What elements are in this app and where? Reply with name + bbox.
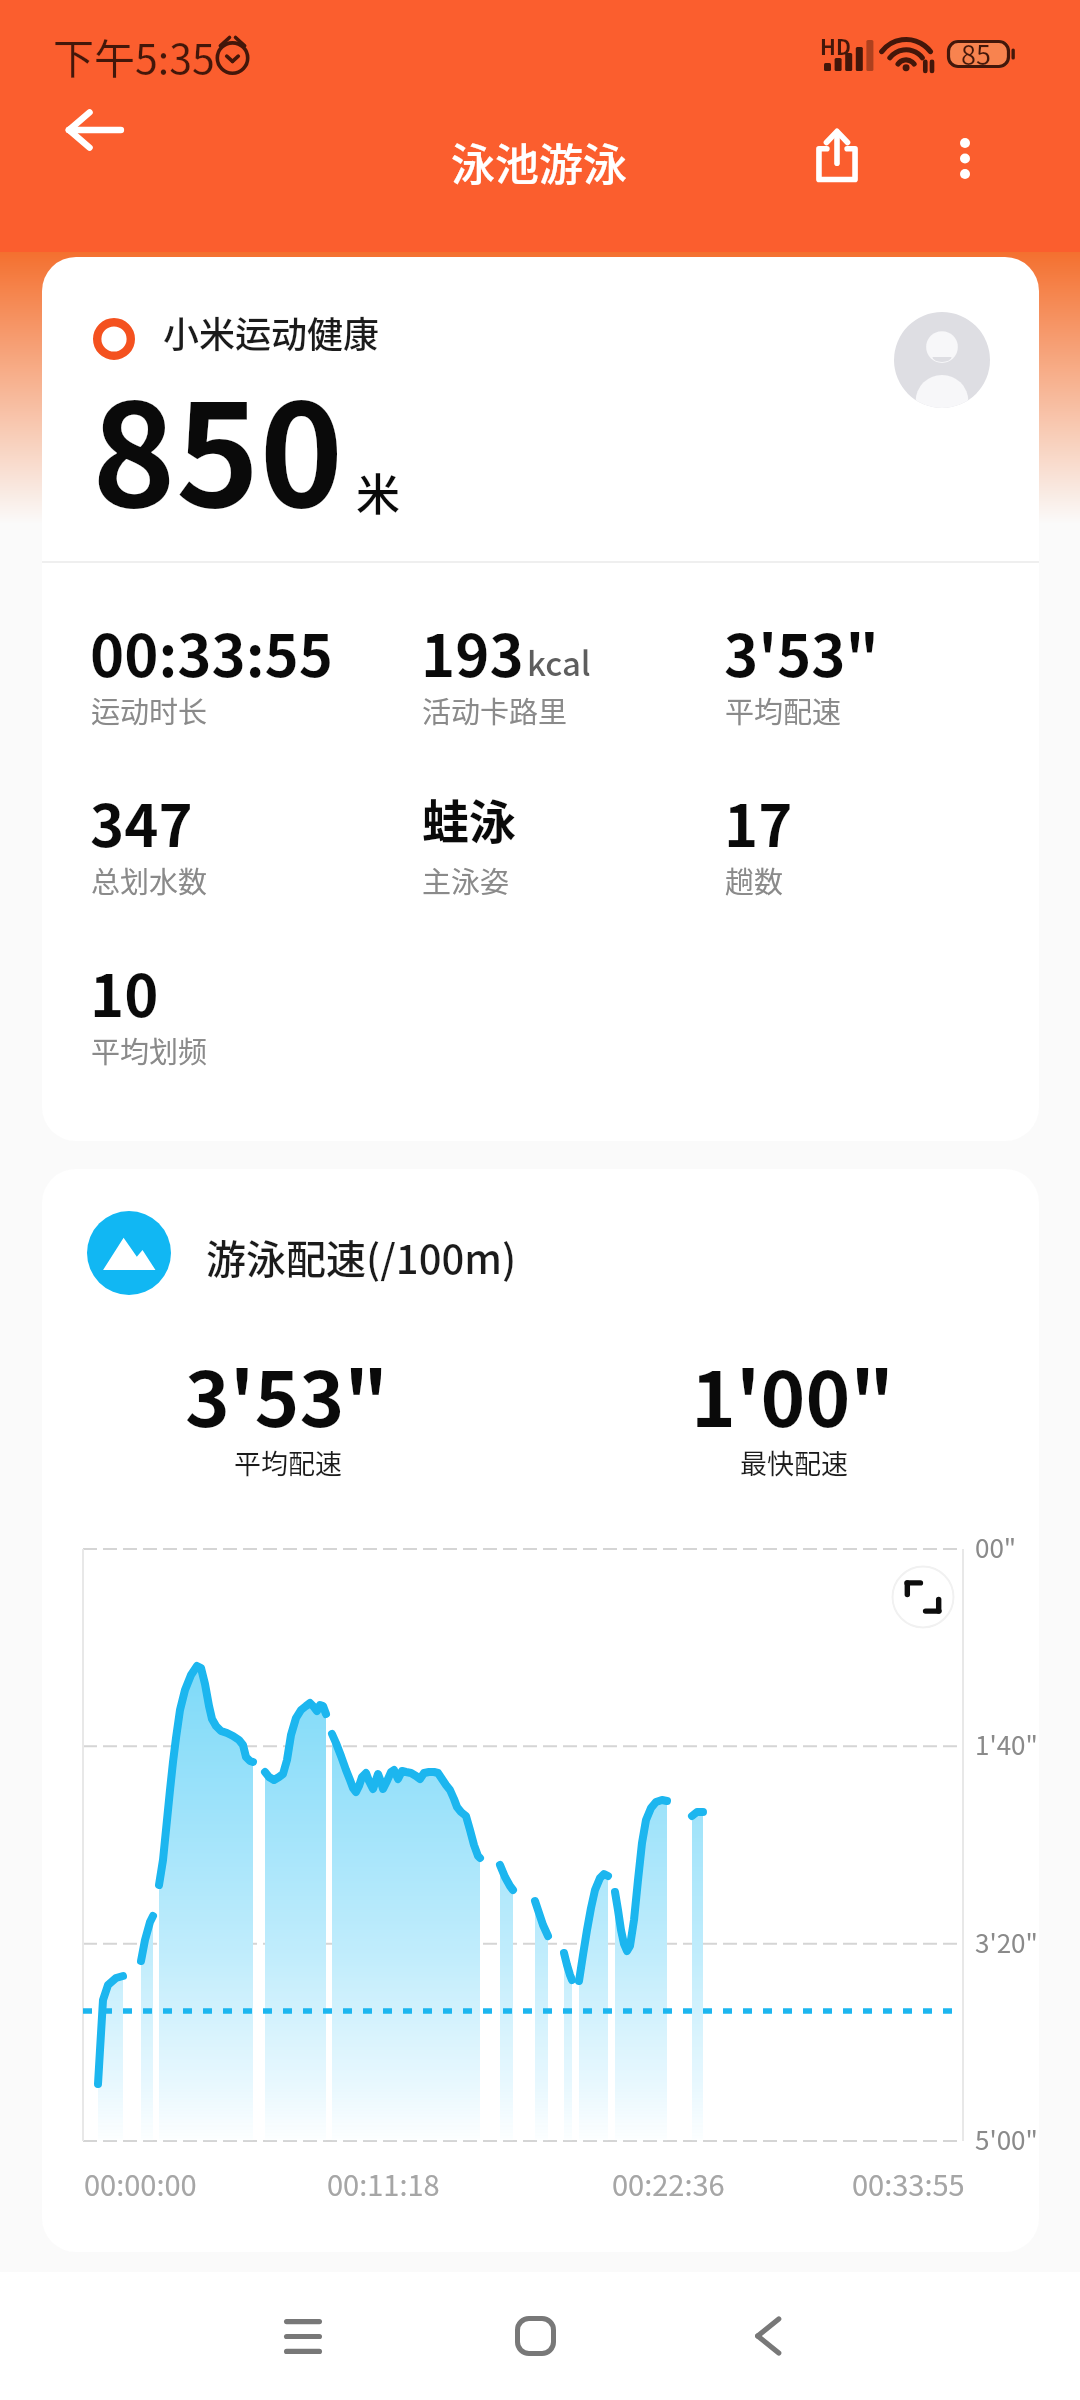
staticText: 平均划频 — [91, 1029, 208, 1071]
staticText: 193 — [421, 610, 524, 694]
staticText: kcal — [527, 638, 591, 686]
button[interactable]: Home — [435, 2272, 635, 2400]
staticText: 00:11:18 — [327, 2162, 440, 2204]
staticText: 蛙泳 — [422, 784, 516, 852]
staticText: 00:33:55 — [90, 610, 334, 694]
staticText: 850 — [92, 342, 344, 548]
staticText: 3'20" — [975, 1923, 1038, 1961]
button[interactable]: Back — [668, 2272, 868, 2400]
staticText: 小米运动健康 — [163, 306, 380, 358]
staticText: 347 — [90, 780, 193, 864]
staticText: 平均配速 — [725, 689, 842, 731]
button[interactable]: Recent apps — [203, 2272, 403, 2400]
staticText: 米 — [356, 460, 400, 524]
staticText: 00" — [975, 1528, 1017, 1566]
button[interactable]: Profile — [894, 312, 990, 408]
staticText: 下午5:35 — [53, 26, 215, 85]
button[interactable]: Back — [34, 62, 154, 198]
staticText: 00:00:00 — [84, 2162, 197, 2204]
staticText: 趟数 — [725, 859, 784, 901]
button[interactable]: Share — [781, 87, 893, 223]
staticText: 平均配速 — [234, 1443, 342, 1482]
staticText: 00:22:36 — [612, 2162, 725, 2204]
staticText: 00:33:55 — [852, 2162, 965, 2204]
staticText: 运动时长 — [91, 689, 208, 731]
staticText: 3'53" — [185, 1339, 388, 1449]
staticText: 主泳姿 — [422, 859, 510, 901]
staticText: 1'40" — [975, 1725, 1038, 1763]
staticText: 总划水数 — [91, 859, 208, 901]
staticText: 活动卡路里 — [422, 689, 568, 731]
staticText: 3'53" — [724, 610, 879, 694]
staticText: 游泳配速(/100m) — [206, 1228, 517, 1286]
staticText: 1'00" — [691, 1339, 894, 1449]
staticText: 泳池游泳 — [451, 130, 627, 194]
staticText: HD — [820, 31, 851, 61]
staticText: 10 — [90, 950, 159, 1034]
button[interactable]: Expand chart — [891, 1565, 955, 1629]
staticText: 85 — [961, 34, 991, 73]
button[interactable]: More options — [909, 90, 1021, 226]
staticText: 最快配速 — [740, 1443, 848, 1482]
staticText: 5'00" — [975, 2120, 1038, 2158]
staticText: 17 — [724, 780, 793, 864]
